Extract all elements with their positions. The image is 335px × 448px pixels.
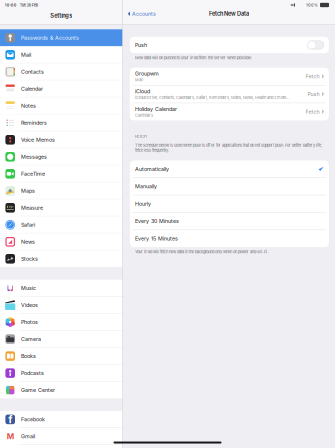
staticText: The schedule below is used when push is …	[135, 143, 322, 153]
staticText: Messages	[21, 154, 47, 160]
staticText: Fetch	[306, 109, 320, 115]
button[interactable]: Podcasts	[0, 365, 122, 382]
button[interactable]: Every 30 Minutes	[130, 213, 329, 230]
staticText: Holiday Calendar	[135, 106, 177, 112]
button[interactable]: Manually	[130, 178, 329, 195]
button[interactable]: Notes	[0, 97, 122, 114]
staticText: Mail	[21, 52, 31, 58]
button[interactable]: Holiday Calendar	[130, 103, 329, 120]
button[interactable]: News	[0, 233, 122, 250]
staticText: Camera	[21, 336, 41, 342]
button[interactable]: iCloud	[130, 85, 329, 103]
staticText: Push	[135, 42, 147, 48]
button[interactable]: Measure	[0, 199, 122, 216]
button[interactable]: Game Center	[0, 382, 122, 399]
staticText: FaceTime	[21, 171, 45, 177]
staticText: Books	[21, 353, 36, 359]
staticText: Calendars	[135, 113, 153, 118]
staticText: Groupwm	[135, 70, 159, 77]
staticText: Safari	[21, 222, 35, 228]
button[interactable]: Automatically	[130, 160, 329, 177]
staticText: Fetch New Data	[209, 10, 249, 17]
staticText: Accounts	[132, 10, 156, 17]
staticText: Photos	[21, 319, 38, 325]
staticText: Every 30 Minutes	[135, 218, 179, 224]
button[interactable]: M	[0, 428, 122, 445]
staticText: Measure	[21, 205, 43, 211]
button[interactable]: Contacts	[0, 63, 122, 80]
staticText: Maps	[21, 188, 35, 194]
staticText: Push	[308, 91, 320, 97]
staticText: 100%	[306, 3, 318, 7]
button[interactable]: Stocks	[0, 250, 122, 267]
staticText: Facebook	[21, 416, 45, 423]
button[interactable]: Photos	[0, 314, 122, 331]
button[interactable]: Voice Memos	[0, 131, 122, 148]
button[interactable]: Every 15 Minutes	[130, 230, 329, 247]
staticText: Settings	[50, 12, 72, 19]
staticText: Reminders	[21, 120, 47, 126]
button[interactable]: Mail	[0, 46, 122, 63]
staticText: Passwords & Accounts	[21, 35, 79, 41]
staticText: Music	[21, 285, 36, 291]
staticText: Stocks	[21, 256, 38, 262]
staticText: FETCH	[135, 134, 147, 139]
button[interactable]: Maps	[0, 182, 122, 199]
button[interactable]: Passwords & Accounts	[0, 29, 122, 46]
button[interactable]: Accounts	[123, 8, 156, 19]
staticText: Your iPad will fetch new data in the bac…	[135, 249, 268, 254]
staticText: Calendar	[21, 86, 43, 92]
button[interactable]: Camera	[0, 331, 122, 348]
staticText: Podcasts	[21, 370, 44, 376]
button[interactable]: Groupwm	[130, 68, 329, 85]
staticText: iCloud Drive, Contacts, Calendars, Safar…	[135, 95, 289, 100]
button[interactable]: Safari	[0, 216, 122, 233]
staticText: M	[7, 432, 14, 441]
button[interactable]: FaceTime	[0, 165, 122, 182]
staticText: Every 15 Minutes	[135, 235, 178, 242]
staticText: News	[21, 239, 35, 245]
staticText: Contacts	[21, 69, 44, 75]
button[interactable]: f	[0, 411, 122, 428]
staticText: Mail	[135, 77, 143, 82]
staticText: iCloud	[135, 88, 150, 95]
staticText: Tue 26 Feb	[20, 3, 38, 7]
staticText: 10:00	[5, 3, 17, 7]
staticText: Fetch	[306, 73, 320, 80]
staticText: Gmail	[21, 433, 35, 440]
button[interactable]: Reminders	[0, 114, 122, 131]
staticText: Notes	[21, 103, 36, 109]
staticText: Hourly	[135, 200, 151, 207]
button[interactable]: Messages	[0, 148, 122, 165]
button[interactable]: Videos	[0, 297, 122, 314]
button[interactable]: Books	[0, 348, 122, 365]
button[interactable]: Music	[0, 280, 122, 297]
staticText: f	[8, 413, 12, 426]
button[interactable]: Hourly	[130, 195, 329, 212]
button[interactable]: Calendar	[0, 80, 122, 97]
staticText: Videos	[21, 302, 38, 308]
staticText: Voice Memos	[21, 137, 55, 143]
staticText: Automatically	[135, 166, 169, 172]
staticText: Manually	[135, 183, 157, 190]
staticText: Game Center	[21, 387, 55, 393]
staticText: New data will be pushed to your iPad fro…	[135, 55, 252, 60]
